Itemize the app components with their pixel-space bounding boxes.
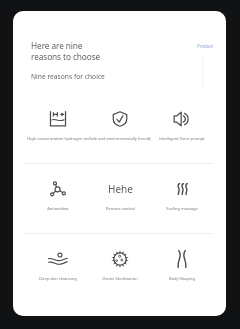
button[interactable]: Product (194, 40, 217, 52)
staticText: High concentration hydrogen molecule (27, 136, 89, 141)
button[interactable]: Safe and environmentally friendly materi… (89, 94, 151, 163)
staticText: Nine reasons for choice (31, 72, 105, 81)
button[interactable]: Deep skin cleansing (27, 234, 89, 303)
staticText: Surfing massage (166, 206, 198, 211)
staticText: Ozone Sterilization (102, 276, 138, 281)
other: Antioxidant (49, 180, 67, 198)
other: Safe and environmentally friendly materi… (111, 110, 129, 128)
other: Body Shaping (173, 250, 191, 268)
staticText: Intelligent Voice prompt (159, 136, 205, 141)
other: Deep skin cleansing (49, 250, 67, 268)
button[interactable]: Ozone Sterilization (89, 234, 151, 303)
button[interactable]: Intelligent Voice prompt (151, 94, 213, 163)
staticText: reasons to choose (31, 51, 101, 62)
other: High concentration hydrogen molecule (49, 110, 67, 128)
staticText: Here are nine (31, 40, 83, 51)
staticText: Body Shaping (169, 276, 195, 281)
staticText: Deep skin cleansing (39, 276, 77, 281)
staticText: Safe and environmentally friendly materi… (89, 136, 151, 141)
button[interactable]: Hehe (89, 164, 151, 233)
button[interactable]: Body Shaping (151, 234, 213, 303)
staticText: Remote control (106, 206, 135, 211)
button[interactable]: Surfing massage (151, 164, 213, 233)
staticText: Hehe (108, 182, 133, 196)
button[interactable]: High concentration hydrogen molecule (27, 94, 89, 163)
other: Ozone Sterilization (111, 250, 129, 268)
staticText: Antioxidant (47, 206, 69, 211)
button[interactable]: Antioxidant (27, 164, 89, 233)
staticText: Product (197, 43, 214, 49)
other: Intelligent Voice prompt (173, 110, 191, 128)
other: Surfing massage (173, 180, 191, 198)
